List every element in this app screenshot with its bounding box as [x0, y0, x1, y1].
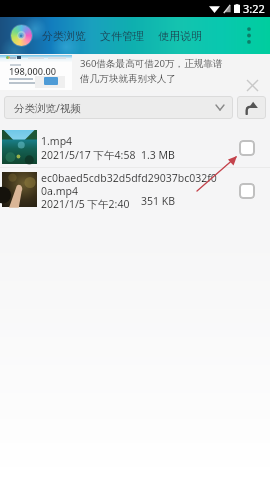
staticText: ec0baed5cdb32d5dfd29037bc032f0 0a.mp4 20… — [41, 171, 217, 211]
staticText: 360借条最高可借20万，正规靠谱 — [80, 57, 223, 70]
staticText: 借几万块就再别求人了 — [80, 73, 176, 85]
staticText: 1.3 MB — [141, 148, 175, 162]
staticText: 使用说明 — [158, 29, 202, 43]
button[interactable]: 文件管理 — [99, 22, 145, 50]
button[interactable]: Go to parent folder — [237, 96, 266, 119]
button[interactable]: Select file — [239, 140, 255, 156]
button[interactable]: Select file — [239, 183, 255, 199]
staticText: 文件管理 — [100, 29, 144, 43]
staticText: 2021/5/17 下午4:58 — [41, 148, 136, 162]
staticText: 分类浏览/视频 — [14, 101, 81, 115]
button[interactable]: Close ad — [242, 75, 262, 95]
staticText: 1.mp4 — [41, 134, 73, 148]
button[interactable]: More options — [239, 17, 259, 54]
staticText: 分类浏览 — [42, 29, 86, 43]
staticText: 351 KB — [141, 194, 176, 208]
button[interactable]: 使用说明 — [157, 22, 203, 50]
button[interactable]: 分类浏览/视频 — [4, 96, 233, 119]
staticText: 3:22 — [243, 1, 265, 16]
button[interactable]: ec0baed5cdb32d5dfd29037bc032f0 0a.mp4 20… — [0, 168, 270, 212]
button[interactable]: 1.mp4 — [0, 124, 270, 168]
button[interactable]: 分类浏览 — [41, 22, 87, 50]
staticText: 198,000.00 — [9, 65, 57, 78]
